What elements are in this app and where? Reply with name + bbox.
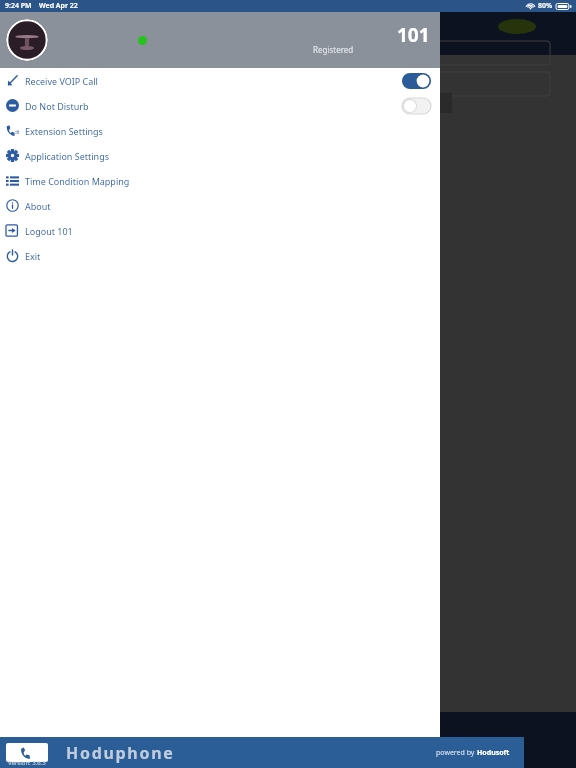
button[interactable]: Logout 101: [0, 218, 440, 243]
button[interactable]: Exit: [0, 243, 440, 268]
button[interactable]: Time Condition Mapping: [0, 168, 440, 193]
staticText: 80%: [538, 1, 553, 11]
button[interactable]: Extension Settings: [0, 118, 440, 143]
button[interactable]: Receive VOIP Call: [0, 68, 440, 93]
staticText: Wed Apr 22: [39, 1, 78, 11]
staticText: 101: [397, 22, 430, 48]
button[interactable]: About: [0, 193, 440, 218]
staticText: Exit: [25, 250, 41, 262]
button[interactable]: Do Not Disturb: [0, 93, 440, 118]
button[interactable]: Application Settings: [0, 143, 440, 168]
staticText: 9:24 PM: [5, 1, 32, 11]
staticText: Logout 101: [25, 225, 73, 237]
staticText: Version: 3.6.3: [8, 759, 46, 767]
staticText: Hoduphone: [66, 742, 175, 764]
staticText: Registered: [313, 44, 354, 55]
button[interactable]: Receive VOIP Call: [402, 73, 431, 89]
staticText: Hodusoft: [477, 748, 510, 758]
staticText: Do Not Disturb: [25, 100, 89, 112]
staticText: Time Condition Mapping: [25, 175, 130, 187]
staticText: powered by: [436, 748, 477, 758]
staticText: Application Settings: [25, 150, 109, 162]
button[interactable]: Profile picture: [6, 19, 48, 61]
staticText: Receive VOIP Call: [25, 75, 98, 87]
staticText: About: [25, 200, 51, 212]
staticText: Extension Settings: [25, 125, 103, 137]
button[interactable]: Do Not Disturb: [402, 98, 431, 114]
